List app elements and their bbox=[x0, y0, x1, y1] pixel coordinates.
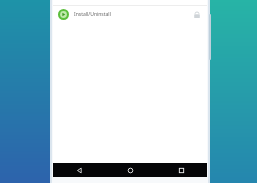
button[interactable]: Recents bbox=[156, 163, 207, 177]
button[interactable]: Locked bbox=[192, 10, 202, 20]
button[interactable]: Back bbox=[53, 163, 105, 177]
button[interactable]: Home bbox=[105, 163, 156, 177]
button[interactable]: Install/Uninstall bbox=[53, 6, 207, 23]
staticText: Install/Uninstall bbox=[74, 11, 192, 18]
